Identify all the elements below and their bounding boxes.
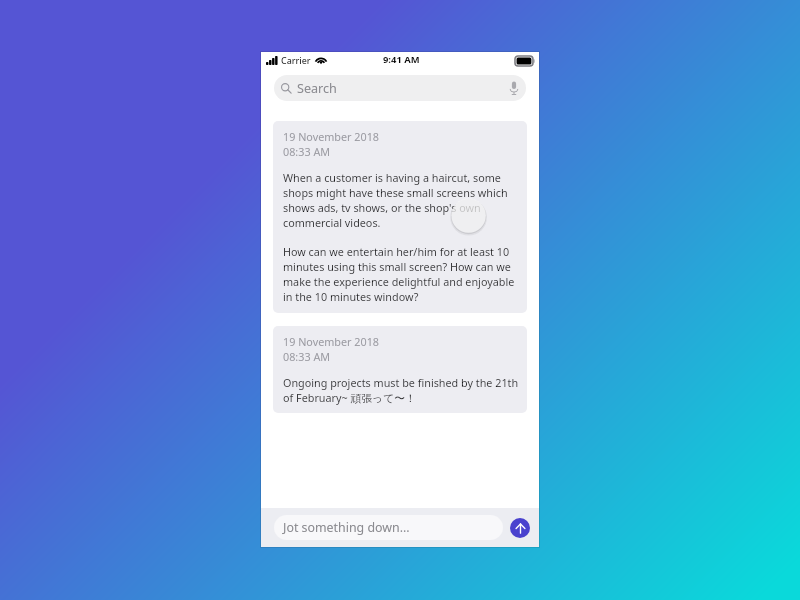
other: Voice search [509,81,519,96]
button[interactable]: 19 November 2018 [273,121,527,313]
staticText: Ongoing projects must be finished by the… [283,375,520,406]
staticText: 9:41 AM [383,53,420,66]
button[interactable]: Jot something down... [274,515,503,540]
staticText: How can we entertain her/him for at leas… [283,244,520,304]
staticText: Search [297,80,337,97]
button[interactable]: 19 November 2018 [273,326,527,413]
staticText: When a customer is having a haircut, som… [283,170,520,230]
staticText: 08:33 AM [283,349,331,364]
staticText: Carrier [281,54,311,66]
button[interactable]: Send [510,518,530,538]
staticText: 08:33 AM [283,144,331,159]
button[interactable]: Search [274,75,526,101]
staticText: 19 November 2018 [283,129,380,144]
staticText: 19 November 2018 [283,334,380,349]
staticText: Jot something down... [283,519,410,536]
